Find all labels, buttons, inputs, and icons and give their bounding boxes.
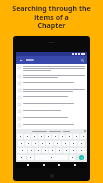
button[interactable]: Key xyxy=(28,148,34,153)
button[interactable]: Key xyxy=(18,141,24,146)
button[interactable] xyxy=(16,94,87,101)
button[interactable]: Key xyxy=(24,134,30,139)
button[interactable]: searc xyxy=(26,58,79,62)
button[interactable]: Menu xyxy=(72,162,78,168)
button[interactable]: Key xyxy=(73,134,79,139)
button[interactable]: Back xyxy=(25,162,31,168)
staticText: searc xyxy=(26,58,34,62)
button[interactable]: Home xyxy=(41,162,47,168)
button[interactable]: Key xyxy=(35,148,41,153)
button[interactable]: Key xyxy=(66,134,72,139)
button[interactable]: Key xyxy=(70,141,77,146)
button[interactable]: Key xyxy=(63,148,69,153)
button[interactable]: Key xyxy=(54,141,61,146)
button[interactable] xyxy=(16,80,87,87)
button[interactable] xyxy=(16,115,87,122)
button[interactable] xyxy=(16,108,87,115)
button[interactable]: Key xyxy=(45,134,51,139)
button[interactable]: Key xyxy=(49,148,55,153)
button[interactable]: Key xyxy=(27,155,34,160)
staticText: Searching through the items of a Chapter xyxy=(4,4,99,30)
button[interactable]: Key xyxy=(39,141,45,146)
button[interactable]: Back xyxy=(18,57,24,63)
button[interactable]: Key xyxy=(17,134,23,139)
button[interactable] xyxy=(16,73,87,80)
button[interactable]: Key xyxy=(17,148,27,153)
button[interactable]: Key xyxy=(78,141,85,146)
button[interactable] xyxy=(49,131,61,132)
button[interactable] xyxy=(16,64,87,73)
button[interactable]: Key xyxy=(56,148,62,153)
button[interactable]: Search xyxy=(76,155,86,160)
other: Home xyxy=(50,174,54,178)
button[interactable] xyxy=(16,122,87,129)
button[interactable]: Key xyxy=(38,134,44,139)
button[interactable]: Key xyxy=(17,155,26,160)
button[interactable]: Search xyxy=(79,57,85,63)
button[interactable]: Recents xyxy=(56,162,62,168)
button[interactable] xyxy=(16,87,87,94)
button[interactable]: Key xyxy=(62,141,69,146)
button[interactable]: Key xyxy=(32,141,38,146)
button[interactable]: Key xyxy=(80,134,86,139)
button[interactable]: Key xyxy=(69,155,75,160)
button[interactable]: Key xyxy=(59,134,65,139)
button[interactable]: Key xyxy=(52,134,58,139)
button[interactable]: Key xyxy=(35,155,68,160)
button[interactable] xyxy=(16,101,87,108)
button[interactable]: Key xyxy=(42,148,48,153)
button[interactable]: Key xyxy=(31,134,37,139)
button[interactable]: Key xyxy=(77,148,86,153)
button[interactable] xyxy=(32,131,47,132)
button[interactable]: Key xyxy=(25,141,31,146)
button[interactable] xyxy=(63,131,70,132)
button[interactable]: Key xyxy=(46,141,53,146)
button[interactable]: Key xyxy=(70,148,76,153)
